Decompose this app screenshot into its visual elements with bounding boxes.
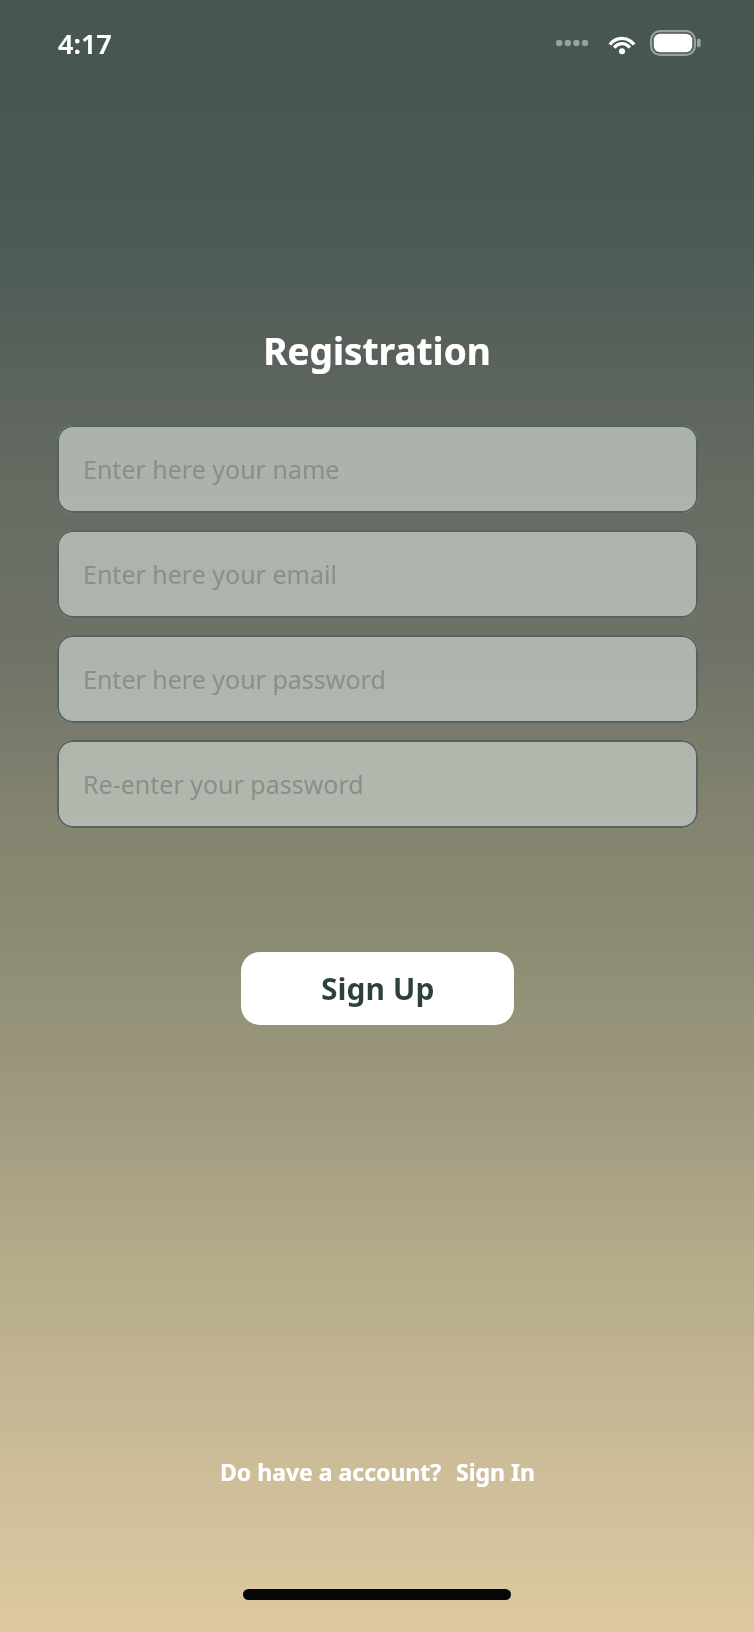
button[interactable]: Sign Up bbox=[241, 952, 514, 1025]
button[interactable]: Enter here your password bbox=[57, 635, 698, 723]
button[interactable]: Sign In bbox=[456, 1456, 535, 1487]
staticText: Sign Up bbox=[321, 968, 435, 1009]
staticText: Enter here your email bbox=[83, 557, 337, 591]
staticText: Registration bbox=[263, 325, 491, 375]
other: Battery bbox=[650, 30, 702, 56]
other: Wi-Fi bbox=[606, 31, 638, 55]
staticText: Re-enter your password bbox=[83, 767, 364, 801]
staticText: Sign In bbox=[456, 1456, 535, 1487]
staticText: Do have a account? bbox=[220, 1456, 442, 1487]
button[interactable]: Re-enter your password bbox=[57, 740, 698, 828]
staticText: Enter here your password bbox=[83, 662, 386, 696]
staticText: 4:17 bbox=[58, 25, 112, 62]
button[interactable]: Enter here your email bbox=[57, 530, 698, 618]
staticText: Enter here your name bbox=[83, 452, 340, 486]
button[interactable]: Do have a account? bbox=[220, 1456, 442, 1487]
button[interactable]: Enter here your name bbox=[57, 425, 698, 513]
